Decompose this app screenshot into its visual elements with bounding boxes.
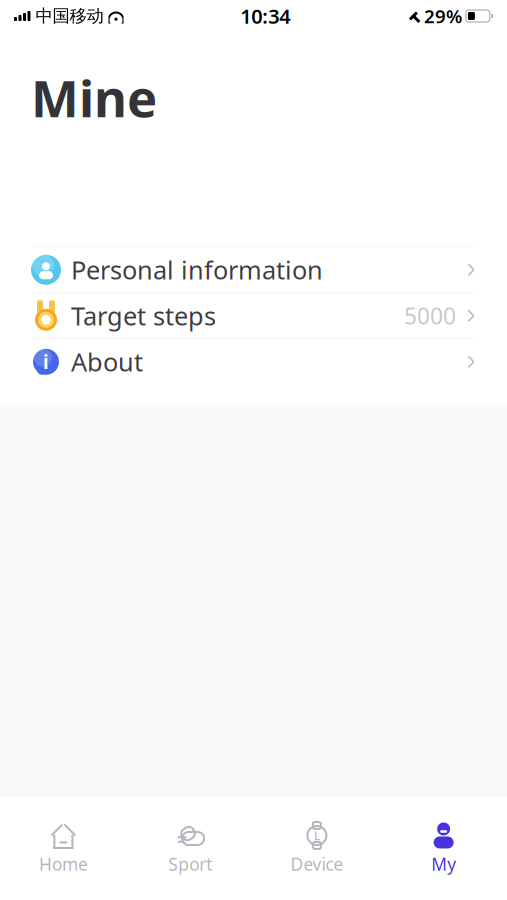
button[interactable]: Sport — [127, 816, 254, 880]
staticText: Mine — [31, 64, 157, 131]
staticText: i — [43, 349, 49, 374]
button[interactable]: Personal information — [0, 247, 507, 292]
staticText: 29% — [424, 4, 462, 28]
button[interactable]: L — [253, 816, 380, 880]
staticText: 5000 — [404, 301, 456, 331]
staticText: My — [431, 852, 456, 875]
button[interactable]: i — [0, 339, 507, 384]
staticText: 10:34 — [240, 3, 290, 29]
staticText: Target steps — [71, 299, 216, 333]
staticText: L — [314, 827, 320, 843]
button[interactable]: My — [380, 816, 507, 880]
staticText: Sport — [168, 852, 212, 875]
button[interactable]: Target steps — [0, 293, 507, 338]
staticText: Home — [39, 852, 88, 875]
staticText: Device — [290, 852, 343, 875]
staticText: About — [71, 345, 143, 379]
button[interactable]: Home — [0, 816, 127, 880]
staticText: 中国移动 — [35, 5, 103, 27]
staticText: Personal information — [71, 253, 323, 287]
